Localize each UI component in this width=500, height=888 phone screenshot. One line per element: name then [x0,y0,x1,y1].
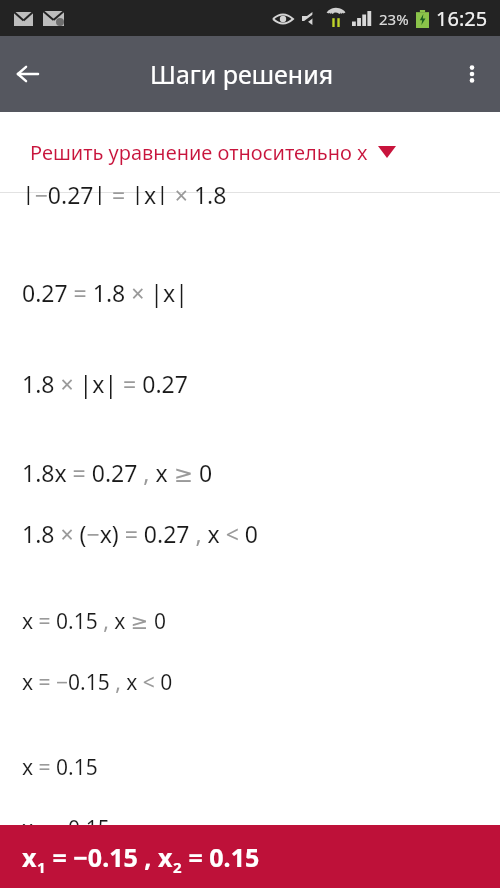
button[interactable]: Back [0,46,56,102]
staticText: x = 0.15 [22,753,98,782]
staticText: 1 [37,857,46,877]
staticText: Шаги решения [150,57,334,91]
staticText: = −0.15 , [46,840,158,874]
staticText: 23% [379,9,409,29]
button[interactable]: x = −0.15 [0,814,500,825]
button[interactable]: x = 0.15 [0,753,500,782]
staticText: 1.8 × (−x) = 0.27 , x < 0 [22,518,259,549]
button[interactable]: |−0.27| = |x| × 1.8 [0,193,500,219]
staticText: 16:25 [436,5,488,32]
staticText: |−0.27| = |x| × 1.8 [22,179,227,205]
staticText: x = −0.15 [22,814,110,825]
staticText: 1.8x = 0.27 , x ≥ 0 [22,457,213,488]
staticText: x [158,840,173,874]
button[interactable]: 0.27 = 1.8 × |x| [0,277,500,308]
staticText: 1.8 × |x| = 0.27 [22,368,188,399]
button[interactable]: 1.8x = 0.27 , x ≥ 0 [0,457,500,488]
staticText: = 0.15 [182,840,260,874]
button[interactable]: More options [444,46,500,102]
button[interactable]: Решить уравнение относительно x [0,112,500,192]
staticText: 2 [173,857,182,877]
button[interactable]: x = −0.15 , x < 0 [0,668,500,697]
staticText: 0.27 = 1.8 × |x| [22,277,188,308]
staticText: x = −0.15 , x < 0 [22,668,173,697]
staticText: Решить уравнение относительно x [30,139,368,166]
button[interactable]: 1.8 × (−x) = 0.27 , x < 0 [0,518,500,549]
staticText: x = 0.15 , x ≥ 0 [22,607,166,636]
button[interactable]: x [0,825,500,888]
staticText: x [22,840,37,874]
button[interactable]: x = 0.15 , x ≥ 0 [0,607,500,636]
button[interactable]: 1.8 × |x| = 0.27 [0,368,500,399]
